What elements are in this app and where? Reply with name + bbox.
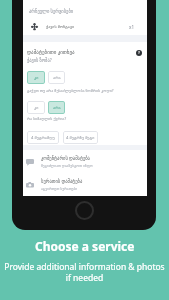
staticText: 4 მეტრამდე <box>31 135 55 141</box>
staticText: გაქვთ თუ არა შესაძლებლობა ნომრის კოდი? <box>27 88 114 93</box>
staticText: არა <box>53 105 61 110</box>
staticText: დამატებითი კითხვა <box>27 49 75 56</box>
staticText: არა <box>53 75 61 80</box>
button[interactable]: სურათის დამატება <box>23 173 147 196</box>
staticText: ჭავის მონტაჟი <box>46 24 75 30</box>
staticText: x1 <box>129 24 135 30</box>
staticText: ატვირთეთ სურათები <box>41 186 78 191</box>
button[interactable]: არა <box>48 71 65 84</box>
staticText: კი <box>34 75 39 80</box>
staticText: რა სიმაღლის ქვრია? <box>27 116 67 121</box>
button[interactable]: Information <box>136 50 142 56</box>
staticText: ? <box>138 50 140 56</box>
button[interactable]: კი <box>27 101 45 114</box>
button[interactable]: კი <box>27 71 45 84</box>
button[interactable]: 4 მეტრამდე <box>27 131 59 144</box>
staticText: Provide additional information & photos … <box>4 261 165 283</box>
staticText: Choose a service <box>35 238 135 254</box>
button[interactable]: ჭავის მონტაჟი <box>23 20 147 33</box>
staticText: არჩეული სერვისები <box>29 8 74 14</box>
staticText: ჭავის ზომა? <box>27 57 52 63</box>
button[interactable]: კომენტარის დამატება <box>23 150 147 173</box>
staticText: კი <box>34 105 39 110</box>
button[interactable]: 4 მეტრზე მეტი <box>63 131 98 144</box>
staticText: 4 მეტრზე მეტი <box>66 135 95 141</box>
staticText: კომენტარის დამატება <box>41 155 90 161</box>
staticText: შეგიძლიათ დააზუსტოთ ინფო <box>41 163 93 168</box>
button[interactable]: არა <box>48 101 65 114</box>
staticText: სურათის დამატება <box>41 178 83 184</box>
